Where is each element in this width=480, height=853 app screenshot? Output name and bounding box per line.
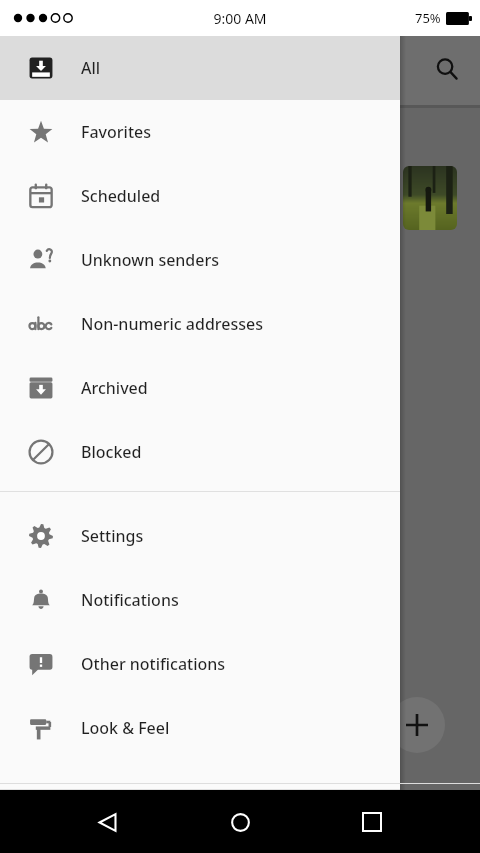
button[interactable]: Back xyxy=(83,798,131,846)
button[interactable]: Blocked xyxy=(0,420,400,484)
staticText: Look & Feel xyxy=(81,717,170,739)
button[interactable]: Favorites xyxy=(0,100,400,164)
button[interactable]: New conversation xyxy=(389,697,445,753)
staticText: Archived xyxy=(81,377,148,399)
button[interactable]: Unknown senders xyxy=(0,228,400,292)
staticText: 9:00 AM xyxy=(213,9,267,28)
button[interactable]: Scheduled xyxy=(0,164,400,228)
staticText: Other notifications xyxy=(81,653,226,675)
staticText: Blocked xyxy=(81,441,142,463)
button[interactable]: Home xyxy=(216,798,264,846)
staticText: All xyxy=(81,57,101,79)
staticText: Unknown senders xyxy=(81,249,220,271)
button[interactable]: Other notifications xyxy=(0,632,400,696)
staticText: Non-numeric addresses xyxy=(81,313,264,335)
button[interactable]: All xyxy=(0,36,400,100)
staticText: Notifications xyxy=(81,589,179,611)
staticText: Settings xyxy=(81,525,144,547)
button[interactable]: Search xyxy=(423,45,471,93)
staticText: 75% xyxy=(415,9,441,27)
staticText: Scheduled xyxy=(81,185,161,207)
button[interactable]: Archived xyxy=(0,356,400,420)
staticText: Favorites xyxy=(81,121,151,143)
button[interactable]: Notifications xyxy=(0,568,400,632)
button[interactable]: Settings xyxy=(0,504,400,568)
button[interactable]: Non-numeric addresses xyxy=(0,292,400,356)
button[interactable]: Look & Feel xyxy=(0,696,400,760)
button[interactable]: Recent apps xyxy=(348,798,396,846)
